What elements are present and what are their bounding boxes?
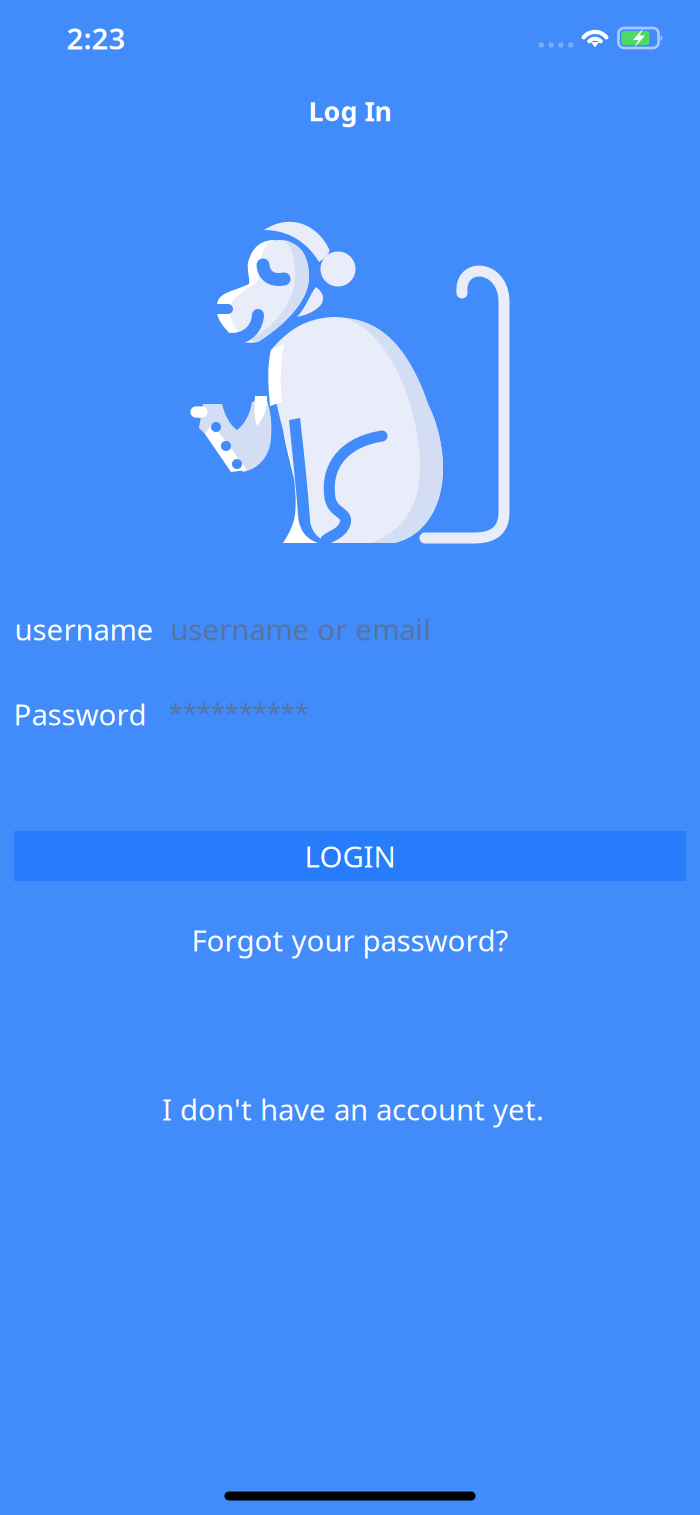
staticText: 2:23 <box>66 18 125 57</box>
staticText: Password <box>13 694 146 733</box>
staticText: Forgot your password? <box>191 920 508 959</box>
staticText: I don't have an account yet. <box>162 1089 544 1128</box>
staticText: username <box>14 609 153 648</box>
staticText: ********** <box>169 695 309 729</box>
button[interactable]: LOGIN <box>14 831 686 881</box>
button[interactable]: I don't have an account yet. <box>138 1080 568 1138</box>
button[interactable]: Forgot your password? <box>170 911 530 969</box>
staticText: Log In <box>308 93 391 129</box>
staticText: LOGIN <box>304 836 395 875</box>
staticText: username or email <box>170 609 431 648</box>
